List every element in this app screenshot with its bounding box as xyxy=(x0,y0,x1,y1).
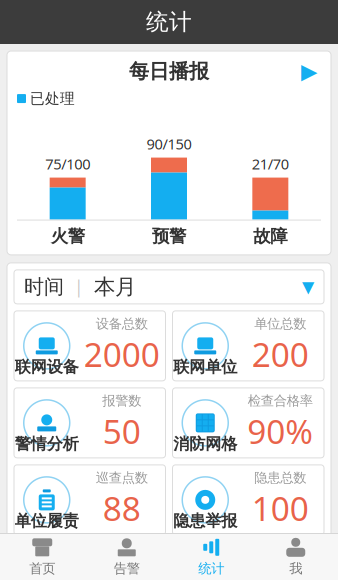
staticText: 单位总数 xyxy=(254,316,306,332)
staticText: 时间 xyxy=(24,275,64,299)
staticText: 统计 xyxy=(146,8,192,36)
staticText: 首页 xyxy=(29,560,55,577)
staticText: 设备总数 xyxy=(96,316,148,332)
button[interactable]: 联网单位 xyxy=(172,311,324,381)
staticText: 2000 xyxy=(84,332,160,376)
staticText: 100 xyxy=(252,486,309,530)
staticText: 90/150 xyxy=(146,134,191,154)
staticText: 统计 xyxy=(198,560,224,577)
staticText: 报警数 xyxy=(102,393,141,409)
staticText: 故障 xyxy=(253,226,287,247)
button[interactable]: 消防网格 xyxy=(172,388,324,458)
button[interactable]: 我 xyxy=(253,534,338,580)
staticText: | xyxy=(64,275,94,298)
staticText: ▼ xyxy=(302,278,314,296)
staticText: 隐患举报 xyxy=(173,511,237,531)
staticText: 本月 xyxy=(94,274,136,300)
staticText: 21/70 xyxy=(252,154,289,174)
staticText: 联网设备 xyxy=(15,357,79,377)
staticText: 单位履责 xyxy=(15,511,79,531)
button[interactable]: 警情分析 xyxy=(14,388,165,458)
staticText: 90% xyxy=(247,409,313,453)
button[interactable]: 联网设备 xyxy=(14,311,165,381)
staticText: ▶ xyxy=(301,59,317,83)
staticText: 我 xyxy=(289,560,302,577)
staticText: 75/100 xyxy=(45,154,90,174)
staticText: 已处理 xyxy=(30,90,75,108)
staticText: 预警 xyxy=(152,226,186,247)
staticText: 88 xyxy=(103,486,141,530)
staticText: 联网单位 xyxy=(173,357,237,377)
staticText: 告警 xyxy=(114,560,140,577)
button[interactable]: 隐患举报 xyxy=(172,465,324,535)
button[interactable]: 统计 xyxy=(169,534,253,580)
staticText: 消防网格 xyxy=(173,434,237,454)
button[interactable]: 告警 xyxy=(84,534,169,580)
button[interactable]: 单位履责 xyxy=(14,465,165,535)
staticText: 巡查点数 xyxy=(96,470,148,486)
staticText: 每日播报 xyxy=(129,59,209,84)
button[interactable]: 时间 xyxy=(14,270,324,304)
button[interactable]: 播放每日播报 xyxy=(295,59,323,83)
staticText: 200 xyxy=(252,332,309,376)
staticText: 50 xyxy=(103,409,141,453)
staticText: 检查合格率 xyxy=(248,393,313,409)
button[interactable]: 首页 xyxy=(0,534,84,580)
staticText: 隐患总数 xyxy=(254,470,306,486)
staticText: 警情分析 xyxy=(15,434,79,454)
staticText: 火警 xyxy=(51,226,85,247)
